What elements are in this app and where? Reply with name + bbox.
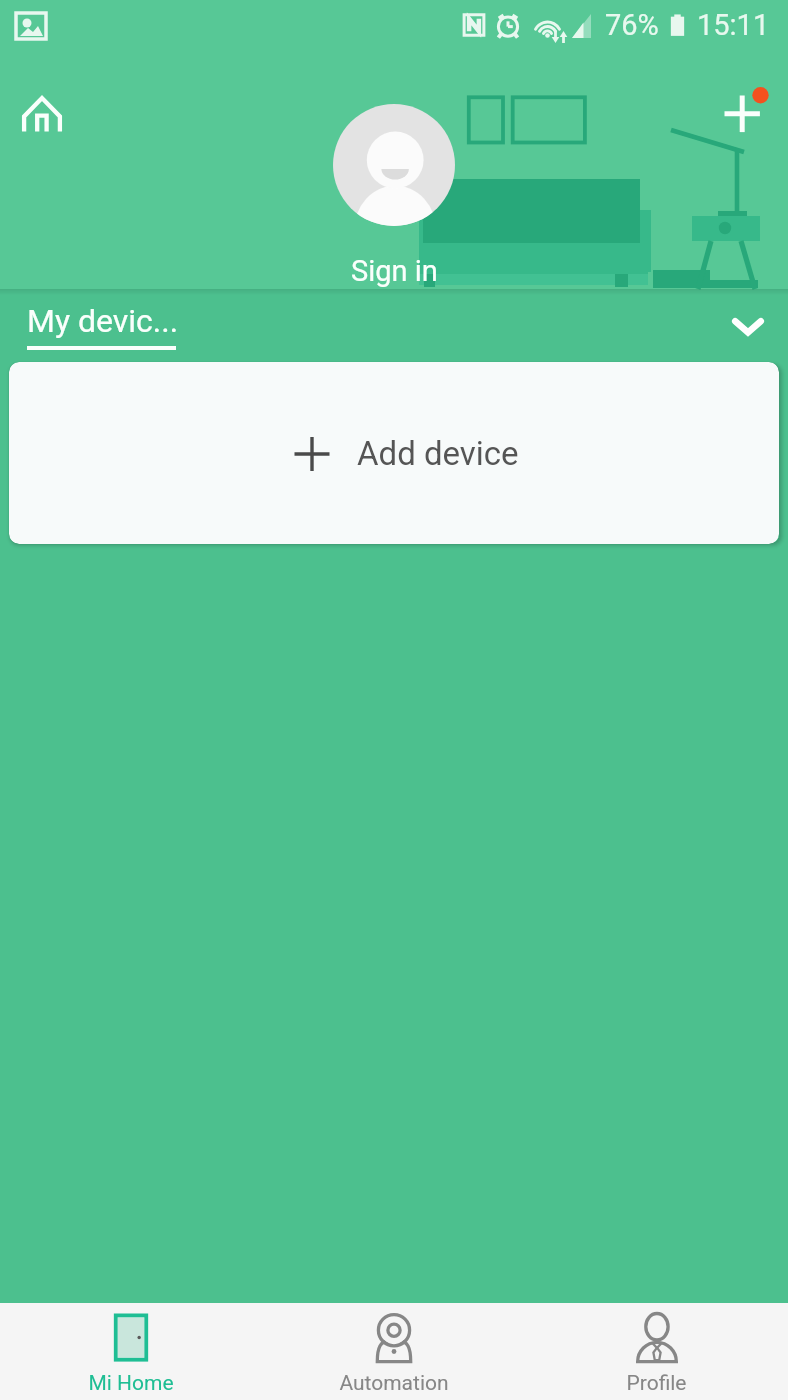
staticText: Profile (626, 1371, 687, 1396)
staticText: My devic... (27, 302, 179, 340)
button[interactable]: Home (10, 85, 72, 147)
staticText: Mi Home (88, 1371, 174, 1396)
staticText: Add device (357, 434, 519, 473)
button[interactable]: Mi Home (0, 1303, 262, 1400)
button[interactable]: Add device (9, 362, 779, 544)
staticText: 15:11 (697, 8, 770, 42)
button[interactable]: Automation (262, 1303, 525, 1400)
button[interactable]: Expand (720, 298, 776, 354)
staticText: Sign in (351, 254, 438, 288)
staticText: 76% (605, 8, 659, 42)
button[interactable]: Account avatar (333, 104, 455, 226)
button[interactable]: Profile (525, 1303, 788, 1400)
button[interactable]: Add device (710, 81, 780, 151)
staticText: Automation (339, 1371, 449, 1396)
button[interactable]: My devic... (27, 302, 179, 350)
